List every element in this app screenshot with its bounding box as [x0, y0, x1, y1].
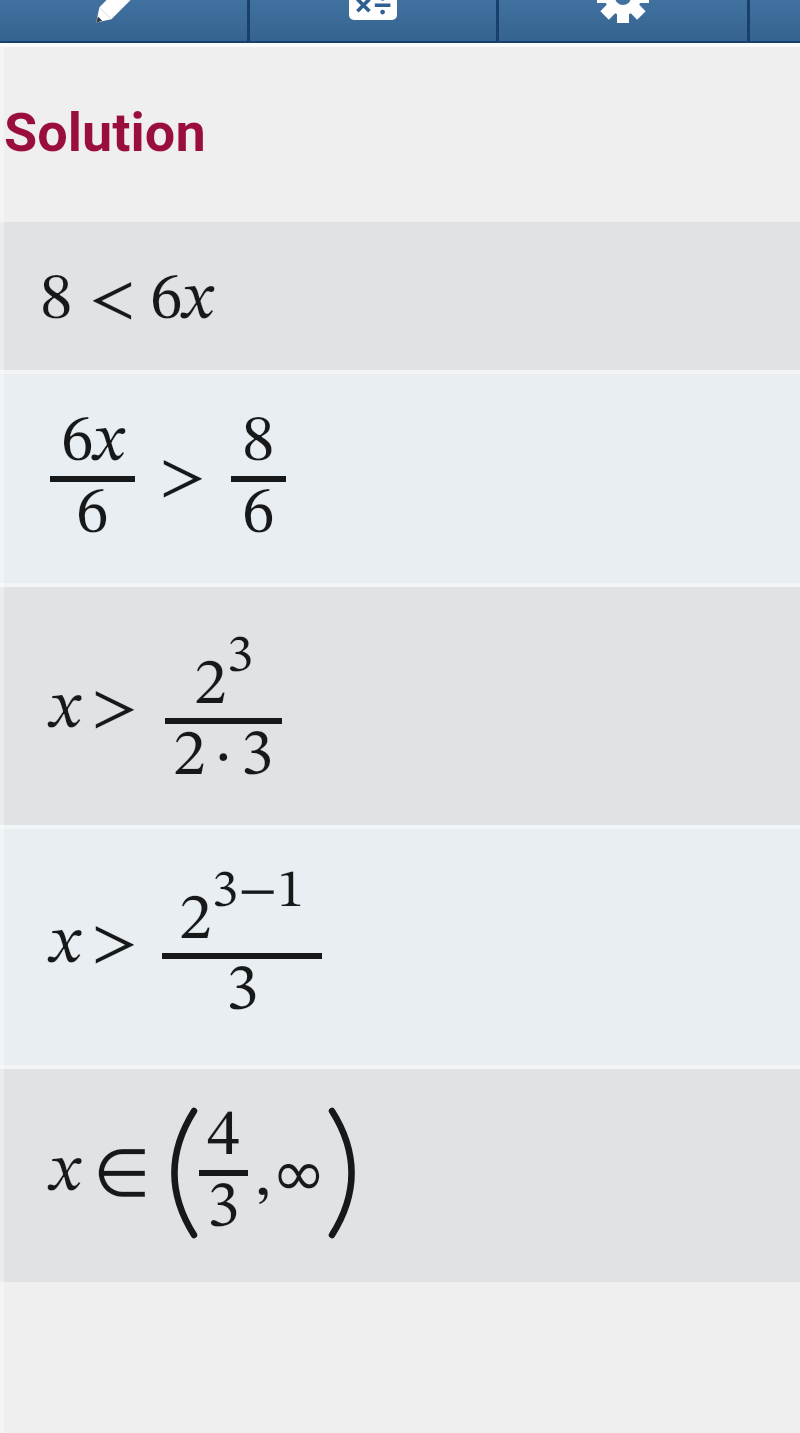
staticText: 6 — [242, 482, 275, 548]
staticText: ,∞ — [255, 1135, 327, 1212]
staticText: > — [91, 677, 138, 743]
staticText: ∈ — [93, 1135, 151, 1212]
button[interactable]: 6x — [0, 374, 800, 583]
staticText: x — [50, 1140, 80, 1206]
staticText: 6 — [76, 482, 109, 548]
button[interactable]: x — [0, 587, 800, 825]
staticText: 4 — [207, 1104, 240, 1170]
staticText: Solution — [4, 101, 206, 164]
button[interactable]: x — [0, 1069, 800, 1282]
staticText: 3 — [226, 959, 259, 1025]
staticText: 23−1 — [179, 865, 305, 953]
staticText: 3 — [207, 1176, 240, 1242]
staticText: 8 < 6x — [40, 268, 213, 334]
staticText: 23 — [194, 630, 254, 718]
staticText: 8 — [242, 410, 275, 476]
staticText: 6x — [61, 410, 124, 476]
staticText: x — [50, 677, 80, 743]
staticText: > — [91, 912, 138, 978]
button[interactable] — [0, 0, 247, 43]
staticText: 2 · 3 — [173, 724, 274, 790]
button[interactable]: x — [0, 829, 800, 1065]
staticText: x — [50, 912, 80, 978]
button[interactable] — [250, 0, 496, 43]
staticText: > — [159, 446, 206, 512]
button[interactable]: 8 < 6x — [0, 222, 800, 370]
button[interactable] — [499, 0, 747, 43]
button[interactable] — [750, 0, 800, 43]
